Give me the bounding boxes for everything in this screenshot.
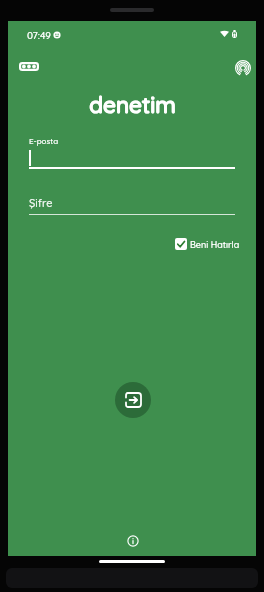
button[interactable]: Şifre yöneticisi	[17, 57, 41, 75]
staticText: 07:49	[27, 29, 51, 42]
button[interactable]: Parmak izi	[232, 57, 254, 79]
button[interactable]: Giriş yap	[115, 382, 151, 418]
staticText: denetim	[89, 90, 176, 118]
staticText: Beni Hatırla	[190, 239, 240, 250]
staticText: denetim	[89, 90, 176, 118]
staticText: E-posta	[29, 136, 59, 146]
button[interactable]: Beni Hatırla	[175, 238, 240, 250]
button[interactable]: Bilgi	[126, 534, 140, 548]
staticText: Şifre	[29, 196, 53, 210]
